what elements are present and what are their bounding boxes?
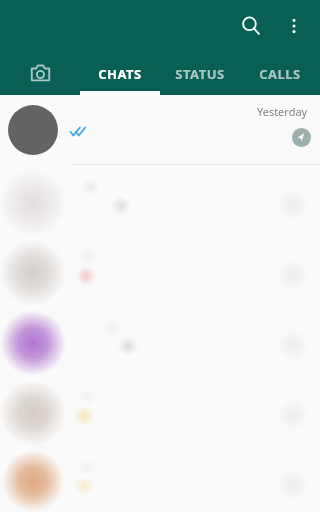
button[interactable]: More options xyxy=(274,6,314,46)
staticText: Yesterday xyxy=(257,104,308,119)
button[interactable] xyxy=(0,310,320,380)
button[interactable] xyxy=(0,240,320,310)
staticText: CHATS xyxy=(98,65,142,83)
button[interactable]: Search xyxy=(228,3,274,49)
button[interactable]: Camera xyxy=(0,52,80,95)
staticText: STATUS xyxy=(175,65,225,83)
button[interactable]: CALLS xyxy=(240,52,320,95)
button[interactable] xyxy=(0,450,320,512)
button[interactable] xyxy=(0,380,320,450)
staticText: CALLS xyxy=(259,65,301,83)
button[interactable]: Muted xyxy=(292,128,311,147)
button[interactable]: Yesterday xyxy=(0,95,320,170)
button[interactable]: CHATS xyxy=(80,52,160,95)
button[interactable]: STATUS xyxy=(160,52,240,95)
button[interactable] xyxy=(0,170,320,240)
